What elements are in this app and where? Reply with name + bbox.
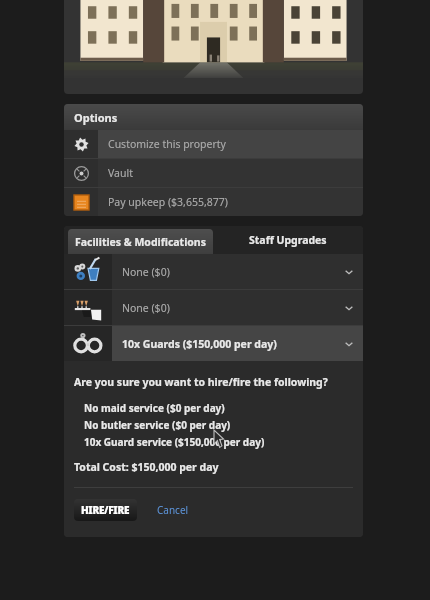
other: Expand: [343, 302, 355, 314]
button[interactable]: HIRE/FIRE: [74, 499, 137, 521]
other: Expand: [343, 338, 355, 350]
other: Expand: [343, 266, 355, 278]
staticText: HIRE/FIRE: [81, 503, 130, 517]
button[interactable]: Guard service: [64, 326, 363, 361]
staticText: Cancel: [157, 503, 189, 517]
staticText: Pay upkeep ($3,655,877): [108, 195, 228, 209]
staticText: Total Cost: $150,000 per day: [74, 460, 219, 474]
button[interactable]: Vault: [64, 159, 363, 187]
staticText: Vault: [108, 166, 133, 180]
staticText: Customize this property: [108, 137, 226, 151]
staticText: None ($0): [122, 301, 343, 315]
staticText: 10x Guards ($150,000 per day): [122, 337, 343, 351]
other: Pay upkeep: [74, 195, 89, 210]
staticText: 10x Guard service ($150,000 per day): [84, 435, 265, 449]
button[interactable]: Staff Upgrades: [213, 226, 363, 254]
staticText: Are you sure you want to hire/fire the f…: [74, 375, 328, 389]
staticText: No maid service ($0 per day): [84, 401, 225, 415]
staticText: Options: [74, 110, 118, 125]
button[interactable]: Pay upkeep: [64, 188, 363, 216]
other: Vault: [74, 166, 89, 181]
staticText: No butler service ($0 per day): [84, 418, 231, 432]
button[interactable]: Cancel: [155, 501, 191, 519]
other: Butler service: [73, 293, 103, 323]
button[interactable]: Facilities & Modifications: [68, 229, 213, 254]
button[interactable]: Maid service: [64, 254, 363, 289]
button[interactable]: Butler service: [64, 290, 363, 325]
other: Maid service: [73, 257, 103, 287]
other: Customize: [74, 137, 89, 152]
staticText: None ($0): [122, 265, 343, 279]
staticText: Staff Upgrades: [249, 233, 327, 247]
button[interactable]: Customize: [64, 130, 363, 158]
staticText: Facilities & Modifications: [75, 235, 206, 249]
other: Guard service: [73, 329, 103, 359]
